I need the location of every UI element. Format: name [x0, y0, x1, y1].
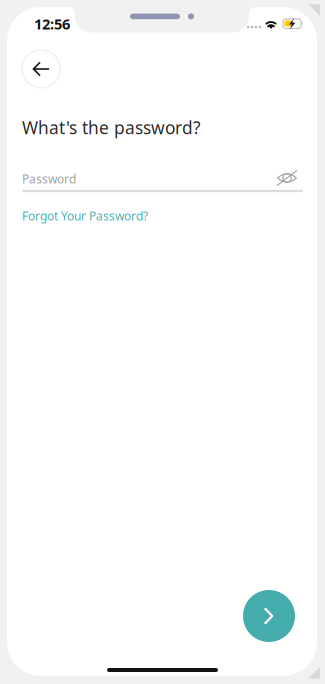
staticText: 12:56 — [34, 14, 70, 33]
staticText: Forgot Your Password? — [22, 208, 148, 224]
button[interactable]: Continue — [243, 590, 295, 642]
staticText: Password — [22, 171, 76, 187]
button[interactable]: Back — [22, 50, 60, 88]
staticText: What's the password? — [22, 116, 201, 139]
button[interactable]: Forgot Your Password? — [22, 208, 148, 224]
button[interactable]: Show password — [276, 169, 298, 187]
